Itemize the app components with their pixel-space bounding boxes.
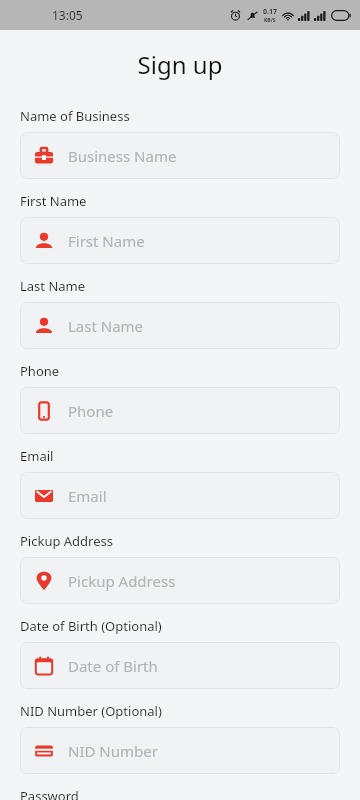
button[interactable]: Email [20, 472, 340, 519]
button[interactable]: Last Name [20, 302, 340, 349]
staticText: Business Name [68, 146, 177, 166]
button[interactable]: NID Number (Optional) [20, 727, 340, 774]
staticText: First Name [20, 192, 87, 210]
staticText: Email [20, 447, 54, 465]
staticText: 0.17 [263, 7, 277, 17]
staticText: Name of Business [20, 107, 130, 125]
staticText: 13:05 [52, 7, 83, 23]
staticText: Email [68, 486, 107, 506]
staticText: Phone [20, 362, 60, 380]
button[interactable]: First Name [20, 217, 340, 264]
staticText: Pickup Address [20, 532, 114, 550]
staticText: Last Name [20, 277, 86, 295]
staticText: Sign up [0, 48, 360, 81]
staticText: Phone [68, 401, 114, 421]
staticText: KB/S [264, 17, 276, 24]
staticText: NID Number [68, 741, 158, 761]
staticText: Date of Birth (Optional) [20, 617, 162, 635]
staticText: First Name [68, 231, 145, 251]
staticText: Password [20, 787, 79, 800]
staticText: Pickup Address [68, 571, 176, 591]
button[interactable]: Name of Business [20, 132, 340, 179]
staticText: Last Name [68, 316, 144, 336]
staticText: NID Number (Optional) [20, 702, 162, 720]
button[interactable]: Phone [20, 387, 340, 434]
staticText: Date of Birth [68, 656, 158, 676]
button[interactable]: Pickup Address [20, 557, 340, 604]
button[interactable]: Date of Birth (Optional) [20, 642, 340, 689]
